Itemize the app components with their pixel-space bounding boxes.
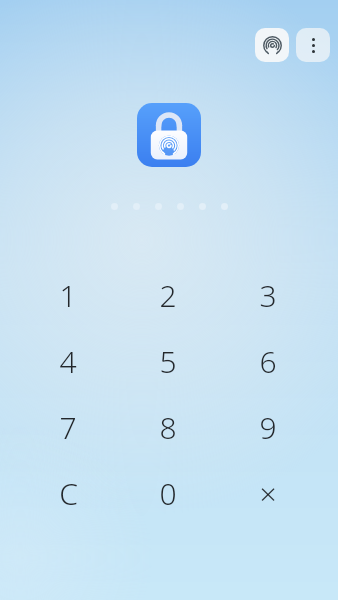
button[interactable]: 5 — [118, 328, 218, 394]
staticText: × — [259, 473, 277, 514]
button[interactable]: 0 — [118, 460, 218, 526]
staticText: 4 — [59, 341, 77, 382]
button[interactable]: × — [218, 460, 318, 526]
button[interactable]: 1 — [18, 262, 118, 328]
staticText: 0 — [159, 473, 177, 514]
staticText: 6 — [259, 341, 277, 382]
button[interactable]: 3 — [218, 262, 318, 328]
button[interactable]: C — [18, 460, 118, 526]
staticText: 8 — [159, 407, 177, 448]
staticText: C — [59, 473, 78, 514]
button[interactable]: More options — [296, 28, 330, 62]
button[interactable]: 2 — [118, 262, 218, 328]
staticText: 1 — [59, 275, 77, 316]
staticText: 9 — [259, 407, 277, 448]
staticText: 3 — [259, 275, 277, 316]
button[interactable]: 9 — [218, 394, 318, 460]
staticText: 5 — [159, 341, 177, 382]
staticText: 2 — [159, 275, 177, 316]
button[interactable]: 7 — [18, 394, 118, 460]
staticText: 7 — [59, 407, 77, 448]
button[interactable]: 8 — [118, 394, 218, 460]
button[interactable]: 6 — [218, 328, 318, 394]
button[interactable]: 4 — [18, 328, 118, 394]
button[interactable]: Unlock with fingerprint — [255, 28, 289, 62]
